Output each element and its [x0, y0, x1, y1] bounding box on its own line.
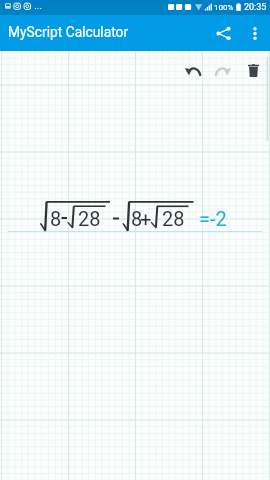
button[interactable]: Undo	[178, 55, 208, 85]
staticText: 8	[50, 207, 62, 230]
staticText: 8	[131, 207, 143, 230]
staticText: 28	[78, 207, 101, 230]
button[interactable]: Redo	[208, 55, 238, 85]
staticText: 100%	[214, 3, 234, 12]
button[interactable]: More options	[240, 19, 269, 48]
staticText: MyScript Calculator	[8, 24, 129, 40]
staticText: 28	[162, 207, 185, 230]
button[interactable]: Share	[207, 17, 240, 50]
button[interactable]: Delete	[238, 55, 268, 85]
staticText: 20:35	[244, 2, 267, 13]
staticText: +	[140, 207, 152, 230]
staticText: =	[199, 207, 210, 230]
staticText: -2	[210, 207, 227, 230]
